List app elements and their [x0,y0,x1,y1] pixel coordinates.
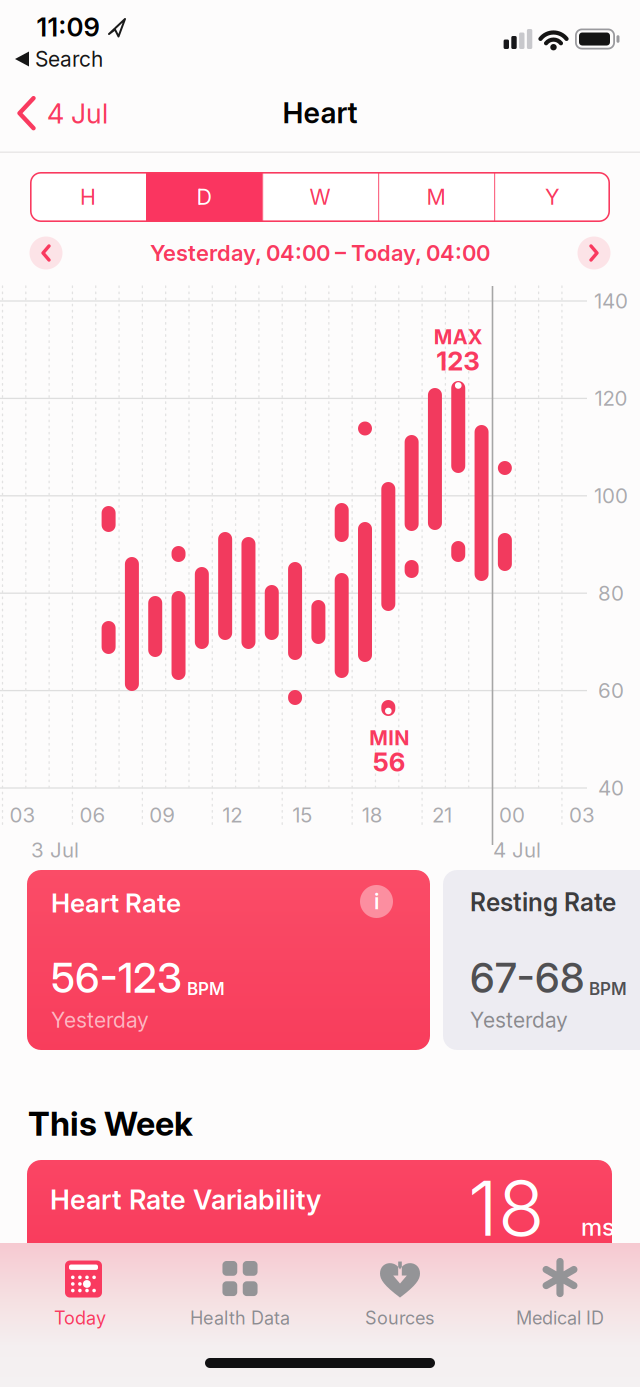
staticText: Heart Rate Variability [50,1184,321,1215]
staticText: D [196,184,211,209]
staticText: 18 [362,803,383,827]
staticText: 15 [292,803,312,827]
staticText: MIN [369,726,409,750]
button[interactable]: Heart Rate [27,870,430,1050]
button[interactable]: About Heart Rate [360,885,393,918]
staticText: MAX [434,325,483,349]
button[interactable]: Next day [577,236,610,269]
button[interactable]: M [378,172,494,222]
staticText: Sources [365,1307,435,1328]
staticText: Resting Rate [470,888,616,916]
staticText: 4 Jul [493,838,541,862]
staticText: 123 [436,346,480,376]
staticText: Health Data [190,1307,290,1328]
button[interactable]: Y [494,172,610,222]
staticText: 120 [594,386,627,410]
staticText: 40 [598,776,624,800]
staticText: Heart Rate [51,888,181,918]
staticText: 11:09 [36,12,99,42]
staticText: Yesterday [51,1008,149,1032]
button[interactable]: Previous day [29,236,62,269]
button[interactable]: 4 Jul [17,98,108,129]
staticText: 4 Jul [47,98,108,129]
button[interactable]: Heart Rate Variability [27,1160,612,1270]
staticText: Yesterday, 04:00 – Today, 04:00 [150,240,490,266]
staticText: 56 [373,747,406,777]
staticText: BPM [589,979,627,999]
staticText: Today [54,1307,106,1328]
staticText: Y [545,184,559,209]
staticText: 00 [499,803,525,827]
staticText: 80 [598,581,624,605]
staticText: ms [581,1213,615,1241]
staticText: i [374,889,379,914]
button[interactable]: Medical ID [516,1259,604,1328]
staticText: 03 [9,803,35,827]
staticText: H [80,184,96,209]
staticText: 12 [222,803,242,827]
button[interactable]: Today [54,1259,106,1328]
staticText: Heart [282,96,357,129]
staticText: 03 [569,803,595,827]
button[interactable]: Resting Rate [443,870,640,1050]
button[interactable]: Health Data [190,1259,290,1328]
staticText: 09 [149,803,175,827]
staticText: 100 [594,484,628,508]
staticText: Yesterday [470,1008,568,1032]
staticText: 21 [432,803,452,827]
button[interactable]: W [262,172,378,222]
staticText: M [426,184,445,209]
staticText: BPM [187,979,225,999]
button[interactable]: D [146,172,262,222]
staticText: Medical ID [516,1307,604,1328]
staticText: Search [35,47,103,71]
button[interactable]: H [30,172,146,222]
staticText: 140 [594,289,628,313]
button[interactable]: Search [15,47,103,71]
staticText: W [309,184,330,209]
staticText: 3 Jul [31,838,79,862]
button[interactable]: Sources [365,1259,435,1328]
staticText: 06 [79,803,105,827]
staticText: This Week [28,1104,193,1143]
staticText: 67-68 [470,954,584,1002]
staticText: 60 [598,679,624,702]
staticText: 56-123 [51,954,182,1002]
staticText: 18 [468,1164,544,1252]
